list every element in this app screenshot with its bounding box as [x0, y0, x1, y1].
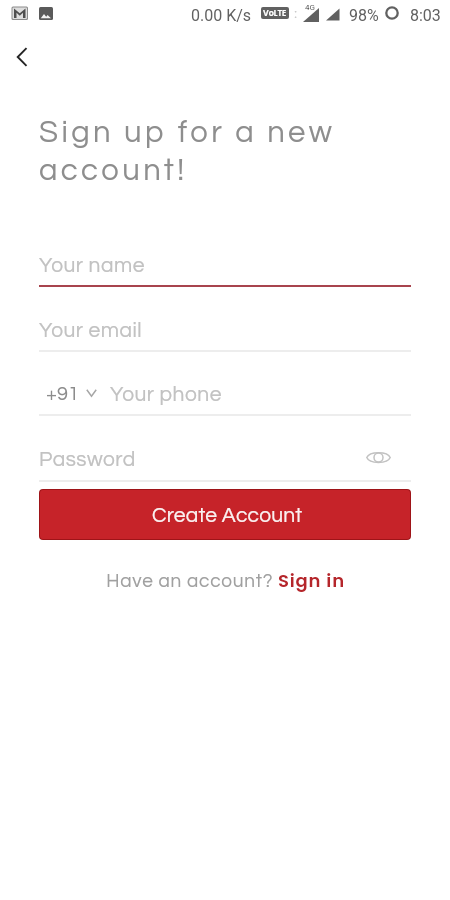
button[interactable]: Have an account? Sign in: [102, 566, 349, 595]
staticText: Your name: [39, 255, 145, 277]
button[interactable]: +91: [46, 384, 97, 405]
staticText: Your email: [39, 320, 143, 342]
staticText: 4G: [305, 3, 315, 12]
staticText: Have an account? Sign in: [106, 568, 345, 593]
staticText: :: [294, 6, 298, 21]
staticText: Password: [39, 449, 136, 471]
button[interactable]: Create Account: [40, 490, 410, 539]
staticText: VoLTE: [263, 8, 287, 19]
staticText: Sign up for a new account!: [39, 117, 374, 187]
staticText: 0.00 K/s: [191, 6, 252, 25]
staticText: 8:03: [410, 6, 441, 25]
button[interactable]: Back: [2, 36, 44, 78]
staticText: +91: [46, 384, 79, 405]
staticText: 98%: [349, 6, 379, 25]
button[interactable]: Show password: [363, 442, 393, 472]
staticText: Create Account: [152, 505, 303, 527]
staticText: Your phone: [110, 384, 222, 406]
